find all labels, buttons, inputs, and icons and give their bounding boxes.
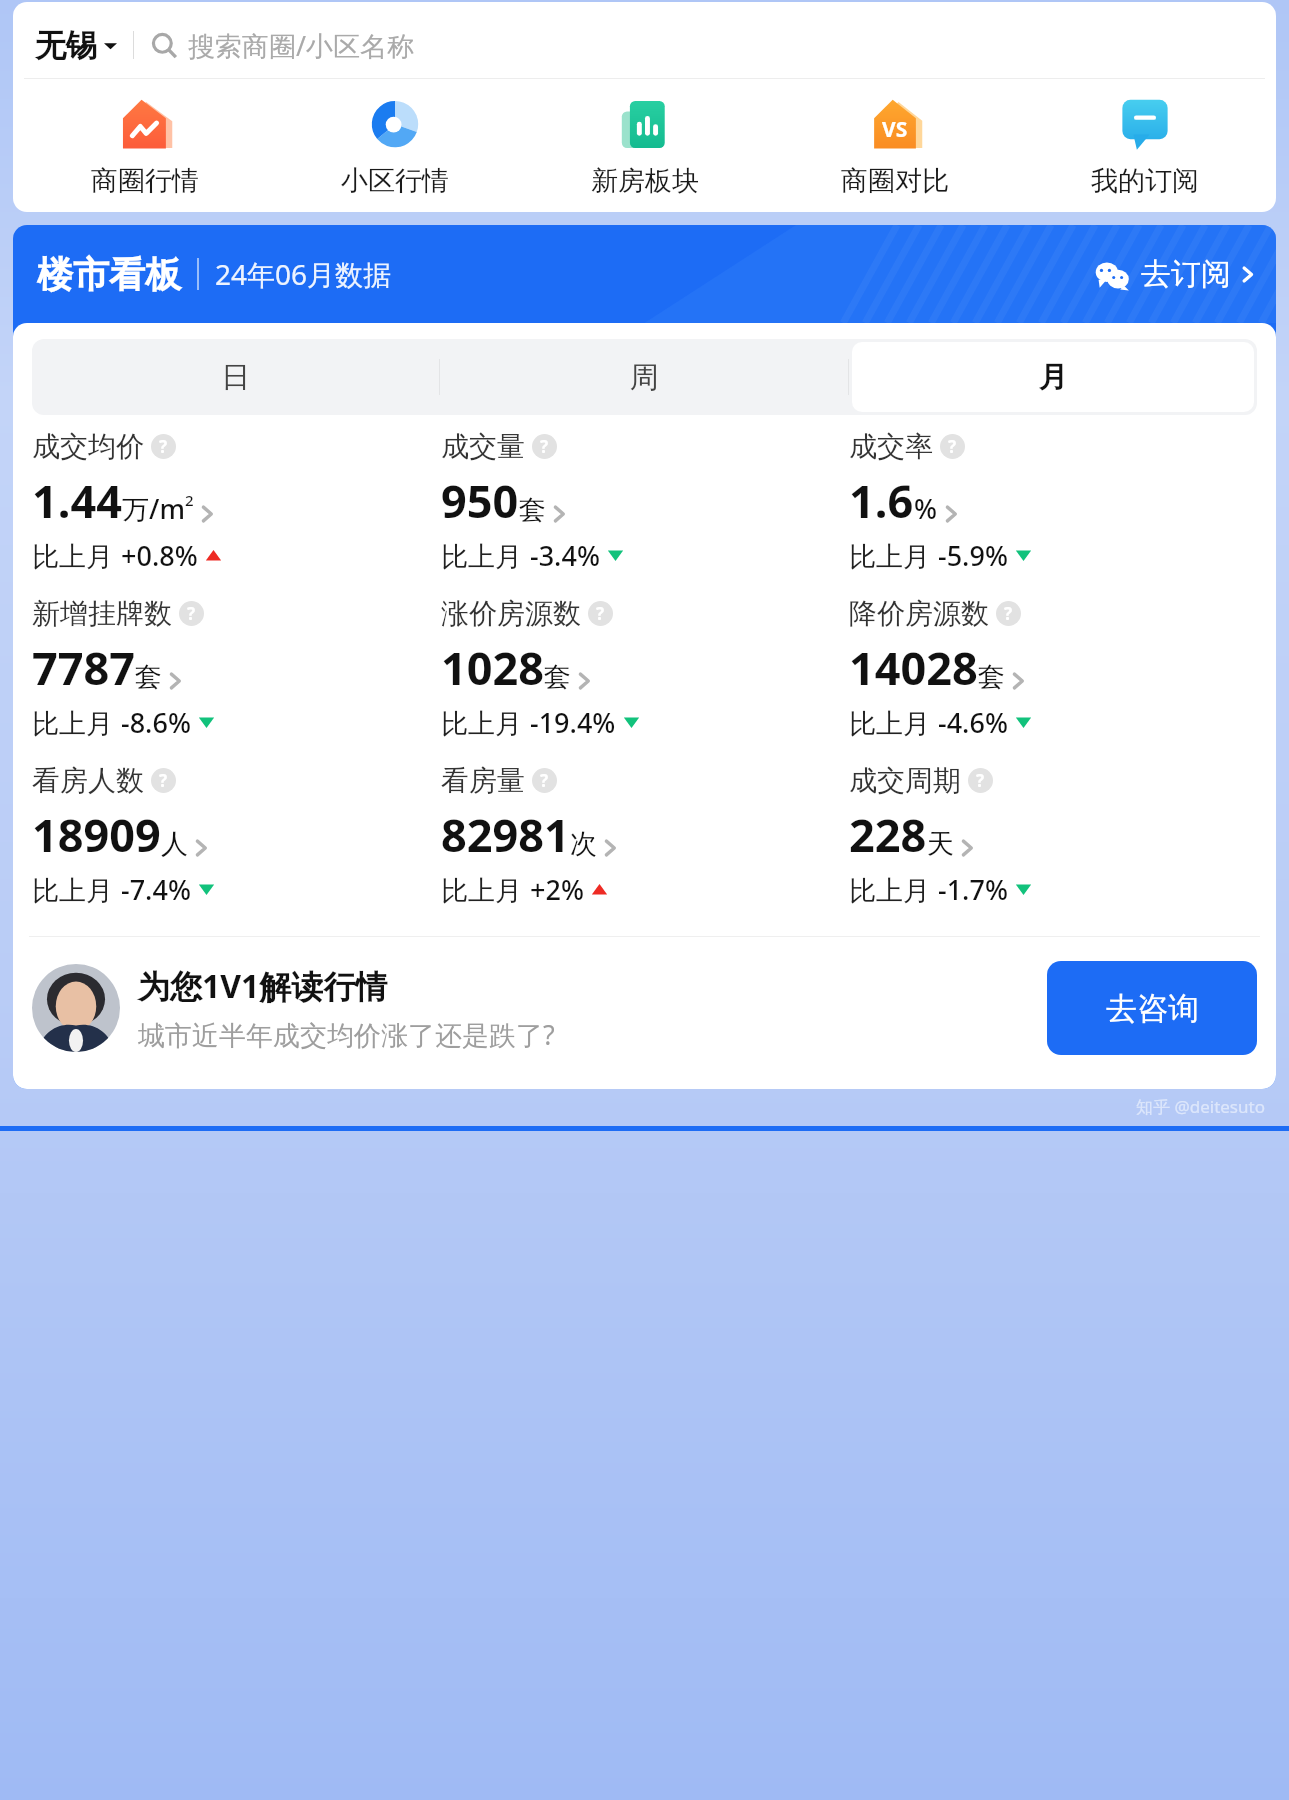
staticText: 1.44 — [32, 470, 122, 531]
staticText: 楼市看板 — [37, 252, 181, 297]
staticText: 新房板块 — [591, 164, 699, 198]
staticText: 比上月 — [441, 871, 530, 908]
staticText: 比上月 — [441, 704, 530, 741]
staticText: 套 — [978, 660, 1005, 694]
staticText: -4.6% — [938, 704, 1008, 741]
staticText: 7787 — [32, 637, 135, 698]
staticText: 无锡 — [35, 26, 97, 65]
staticText: 24年06月数据 — [215, 255, 392, 293]
staticText: 成交量 — [441, 429, 525, 464]
staticText: 套 — [519, 493, 546, 527]
staticText: ? — [1004, 602, 1013, 625]
button[interactable]: 周 — [443, 342, 845, 412]
staticText: % — [914, 490, 938, 527]
staticText: ? — [159, 435, 168, 458]
button[interactable]: 降价房源数 — [849, 596, 1257, 741]
button[interactable]: 小区行情 — [270, 92, 520, 198]
staticText: 商圈对比 — [841, 164, 949, 198]
staticText: -19.4% — [530, 704, 616, 741]
staticText: 看房量 — [441, 763, 525, 798]
staticText: 日 — [221, 359, 250, 396]
staticText: -7.4% — [121, 871, 191, 908]
staticText: 为您1V1解读行情 — [138, 964, 388, 1008]
staticText: 950 — [441, 470, 519, 531]
staticText: 搜索商圈/小区名称 — [188, 27, 415, 64]
button[interactable]: 涨价房源数 — [441, 596, 849, 741]
staticText: ? — [976, 769, 985, 792]
staticText: -5.9% — [938, 537, 1008, 574]
button[interactable]: 成交周期 — [849, 763, 1257, 908]
staticText: 套 — [135, 660, 162, 694]
staticText: 涨价房源数 — [441, 596, 581, 631]
staticText: 套 — [544, 660, 571, 694]
staticText: 比上月 — [849, 537, 938, 574]
staticText: 看房人数 — [32, 763, 144, 798]
staticText: 2 — [185, 490, 194, 510]
button[interactable]: 去咨询 — [1047, 961, 1257, 1055]
staticText: 18909 — [32, 804, 161, 865]
staticText: 周 — [630, 359, 659, 396]
staticText: VS — [882, 115, 908, 144]
staticText: 次 — [570, 827, 597, 861]
staticText: 比上月 — [849, 871, 938, 908]
button[interactable]: 为您1V1解读行情 — [32, 937, 1257, 1079]
staticText: 人 — [161, 827, 188, 861]
staticText: 万/m — [122, 490, 185, 527]
button[interactable]: 新房板块 — [520, 92, 770, 198]
staticText: 比上月 — [32, 537, 121, 574]
button[interactable]: 我的订阅 — [1020, 92, 1270, 198]
staticText: 1028 — [441, 637, 544, 698]
staticText: 知乎 @deitesuto — [1136, 1095, 1265, 1118]
staticText: 成交均价 — [32, 429, 144, 464]
staticText: 月 — [1039, 359, 1068, 396]
staticText: 去咨询 — [1106, 989, 1199, 1028]
staticText: 商圈行情 — [91, 164, 199, 198]
staticText: 14028 — [849, 637, 978, 698]
staticText: 城市近半年成交均价涨了还是跌了? — [138, 1016, 555, 1053]
button[interactable]: 无锡 — [35, 26, 117, 65]
staticText: 82981 — [441, 804, 570, 865]
button[interactable]: 看房人数 — [32, 763, 441, 908]
staticText: ? — [540, 769, 549, 792]
staticText: 1.6 — [849, 470, 914, 531]
button[interactable]: 新增挂牌数 — [32, 596, 441, 741]
staticText: ? — [540, 435, 549, 458]
staticText: -3.4% — [530, 537, 600, 574]
button[interactable]: 日 — [35, 342, 436, 412]
staticText: -1.7% — [938, 871, 1008, 908]
staticText: 比上月 — [441, 537, 530, 574]
button[interactable]: VS — [770, 92, 1020, 198]
staticText: +2% — [530, 871, 584, 908]
staticText: 比上月 — [849, 704, 938, 741]
staticText: 新增挂牌数 — [32, 596, 172, 631]
staticText: 比上月 — [32, 871, 121, 908]
staticText: ? — [596, 602, 605, 625]
staticText: ? — [948, 435, 957, 458]
button[interactable]: 去订阅 — [1095, 255, 1256, 293]
staticText: +0.8% — [121, 537, 198, 574]
button[interactable]: 成交量 — [441, 429, 849, 574]
staticText: 228 — [849, 804, 927, 865]
button[interactable]: 搜索商圈/小区名称 — [151, 27, 1258, 64]
staticText: 小区行情 — [341, 164, 449, 198]
staticText: 天 — [927, 827, 954, 861]
button[interactable]: 成交均价 — [32, 429, 441, 574]
staticText: 降价房源数 — [849, 596, 989, 631]
staticText: ? — [159, 769, 168, 792]
staticText: 成交周期 — [849, 763, 961, 798]
button[interactable]: 看房量 — [441, 763, 849, 908]
staticText: ? — [187, 602, 196, 625]
staticText: 成交率 — [849, 429, 933, 464]
button[interactable]: 月 — [852, 342, 1254, 412]
staticText: 比上月 — [32, 704, 121, 741]
staticText: 去订阅 — [1141, 255, 1231, 293]
button[interactable]: 成交率 — [849, 429, 1257, 574]
staticText: -8.6% — [121, 704, 191, 741]
staticText: 我的订阅 — [1091, 164, 1199, 198]
button[interactable]: 商圈行情 — [19, 92, 270, 198]
